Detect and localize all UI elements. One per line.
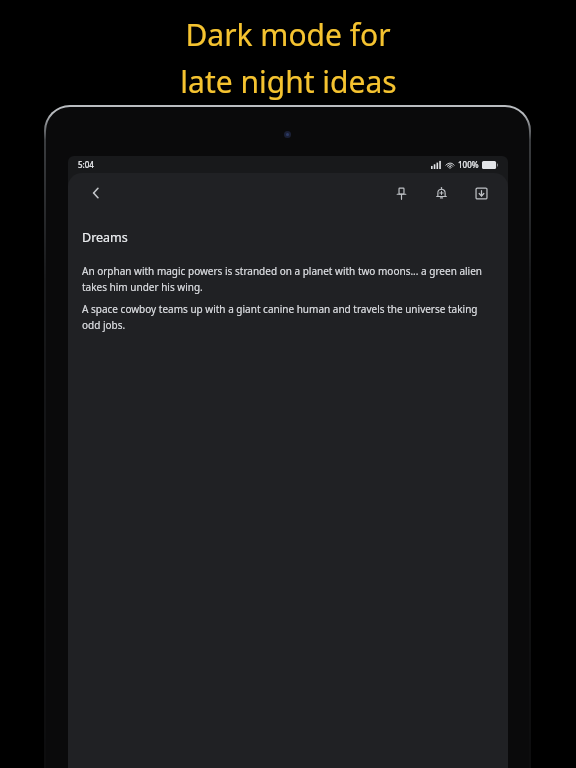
button[interactable]: A space cowboy teams up with a giant can… xyxy=(82,302,494,331)
staticText: 100% xyxy=(458,159,479,170)
staticText: late night ideas xyxy=(180,61,397,102)
button[interactable]: Pin note xyxy=(386,178,416,208)
button[interactable]: Reminder xyxy=(426,178,456,208)
staticText: 5:04 xyxy=(78,159,94,170)
button[interactable]: Back xyxy=(80,177,112,209)
staticText: Dark mode for xyxy=(185,14,391,55)
button[interactable]: Archive xyxy=(466,178,496,208)
button[interactable]: Dreams xyxy=(82,229,128,246)
button[interactable]: An orphan with magic powers is stranded … xyxy=(82,264,494,293)
